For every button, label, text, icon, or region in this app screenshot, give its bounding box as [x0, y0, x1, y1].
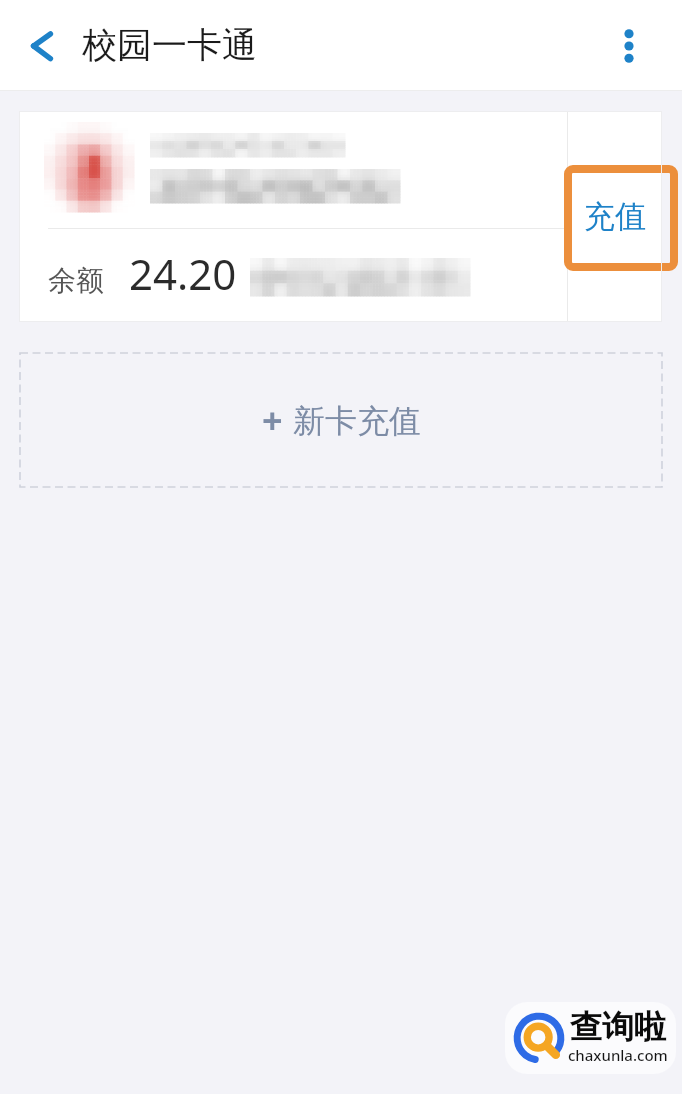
- staticText: 余额: [48, 263, 104, 298]
- button[interactable]: Back: [10, 14, 74, 78]
- staticText: 校园一卡通: [82, 23, 257, 67]
- staticText: +: [262, 396, 283, 445]
- staticText: 充值: [584, 197, 646, 236]
- button[interactable]: Card holder details: [19, 111, 567, 228]
- staticText: chaxunla.com: [568, 1045, 668, 1065]
- staticText: 新卡充值: [293, 401, 421, 441]
- button[interactable]: More options: [597, 14, 661, 78]
- button[interactable]: +: [20, 353, 662, 487]
- staticText: 查询啦: [570, 1007, 666, 1047]
- staticText: 24.20: [129, 245, 237, 302]
- button[interactable]: 充值: [568, 111, 662, 322]
